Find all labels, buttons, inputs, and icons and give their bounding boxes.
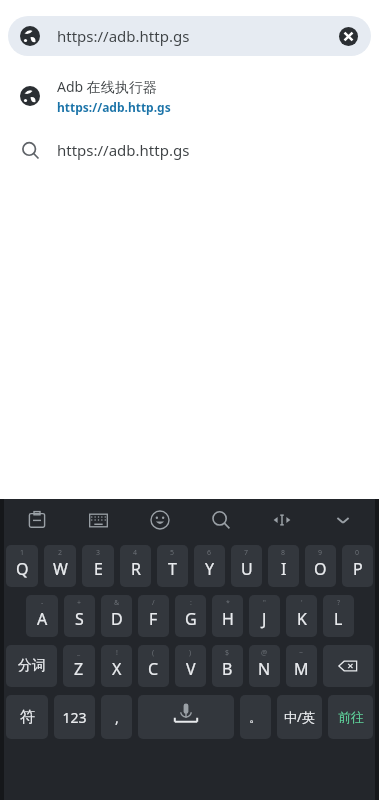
staticText: ?	[337, 598, 341, 608]
button[interactable]: @	[249, 645, 280, 687]
staticText: 符	[20, 708, 35, 727]
button[interactable]: Search	[190, 499, 251, 541]
button[interactable]: Adb 在线执行器	[0, 70, 379, 122]
button[interactable]: '	[286, 595, 317, 637]
staticText: N	[258, 658, 271, 680]
button[interactable]: Clipboard	[6, 499, 68, 541]
button[interactable]: "	[249, 595, 280, 637]
staticText: J	[262, 608, 267, 630]
staticText: 。	[249, 709, 262, 725]
button[interactable]: :	[175, 595, 206, 637]
staticText: P	[353, 558, 363, 580]
button[interactable]: 8	[268, 545, 299, 587]
staticText: ~	[299, 648, 304, 658]
staticText: &	[114, 598, 120, 608]
staticText: 123	[62, 708, 87, 727]
staticText: K	[297, 608, 307, 630]
button[interactable]: (	[138, 645, 169, 687]
staticText: I	[281, 558, 287, 580]
staticText: https://adb.http.gs	[57, 99, 171, 115]
staticText: Y	[205, 558, 215, 580]
staticText: )	[189, 648, 192, 658]
staticText: Q	[16, 558, 29, 580]
button[interactable]: Backspace	[323, 645, 373, 687]
staticText: 5	[170, 548, 175, 558]
staticText: F	[149, 608, 158, 630]
button[interactable]: Keyboard layout	[68, 499, 129, 541]
staticText: ,	[115, 708, 119, 727]
button[interactable]: Emoji	[129, 499, 190, 541]
staticText: R	[131, 558, 141, 580]
staticText: Adb 在线执行器	[57, 77, 157, 96]
staticText: /	[152, 598, 155, 608]
staticText: https://adb.http.gs	[57, 140, 190, 160]
button[interactable]: 2	[44, 545, 76, 587]
staticText: '	[301, 598, 303, 608]
button[interactable]: 。	[240, 695, 271, 739]
staticText: 中/英	[284, 708, 315, 726]
button[interactable]: !	[101, 645, 132, 687]
staticText: W	[53, 558, 68, 580]
staticText: 3	[96, 548, 101, 558]
button[interactable]: ?	[323, 595, 354, 637]
button[interactable]: 1	[6, 545, 38, 587]
button[interactable]: 123	[54, 695, 95, 739]
staticText: 8	[281, 548, 286, 558]
button[interactable]: 9	[305, 545, 336, 587]
button[interactable]: 符	[6, 695, 48, 739]
staticText: 4	[133, 548, 138, 558]
button[interactable]: $	[212, 645, 243, 687]
button[interactable]: 7	[231, 545, 262, 587]
staticText: C	[148, 658, 159, 680]
staticText: H	[222, 608, 234, 630]
staticText: L	[334, 608, 343, 630]
staticText: V	[186, 658, 196, 680]
button[interactable]: https://adb.http.gs	[0, 130, 379, 170]
staticText: G	[185, 608, 197, 630]
staticText: 2	[58, 548, 63, 558]
button[interactable]: Hide keyboard	[312, 499, 373, 541]
staticText: "	[263, 598, 266, 608]
staticText: 7	[244, 548, 249, 558]
button[interactable]: ~	[286, 645, 317, 687]
staticText: :	[190, 598, 192, 608]
staticText: D	[111, 608, 123, 630]
button[interactable]: 6	[194, 545, 225, 587]
button[interactable]: +	[64, 595, 95, 637]
button[interactable]: 分词	[6, 645, 57, 687]
button[interactable]: Cursor	[251, 499, 312, 541]
button[interactable]: )	[175, 645, 206, 687]
staticText: U	[241, 558, 253, 580]
staticText: *	[226, 598, 230, 608]
staticText: https://adb.http.gs	[57, 26, 190, 46]
staticText: S	[75, 608, 84, 630]
button[interactable]: 中/英	[277, 695, 322, 739]
button[interactable]: /	[138, 595, 169, 637]
staticText: M	[294, 658, 309, 680]
button[interactable]: https://adb.http.gs	[8, 16, 371, 56]
staticText: 1	[20, 548, 25, 558]
staticText: @	[261, 648, 268, 658]
staticText: !	[116, 648, 118, 658]
button[interactable]: ,	[101, 695, 132, 739]
staticText: 分词	[18, 657, 46, 675]
button[interactable]: &	[101, 595, 132, 637]
staticText: 6	[207, 548, 212, 558]
button[interactable]: -	[26, 595, 58, 637]
staticText: _	[77, 648, 81, 658]
staticText: +	[77, 598, 82, 608]
button[interactable]: 4	[120, 545, 151, 587]
staticText: $	[225, 648, 230, 658]
button[interactable]: Space	[138, 695, 234, 739]
button[interactable]: 0	[342, 545, 373, 587]
button[interactable]: 前往	[328, 695, 373, 739]
button[interactable]: 3	[82, 545, 114, 587]
button[interactable]: 5	[157, 545, 188, 587]
button[interactable]: Clear	[337, 25, 359, 47]
staticText: B	[222, 658, 233, 680]
staticText: 0	[355, 548, 360, 558]
staticText: T	[168, 558, 177, 580]
button[interactable]: _	[63, 645, 95, 687]
button[interactable]: *	[212, 595, 243, 637]
staticText: -	[41, 598, 44, 608]
